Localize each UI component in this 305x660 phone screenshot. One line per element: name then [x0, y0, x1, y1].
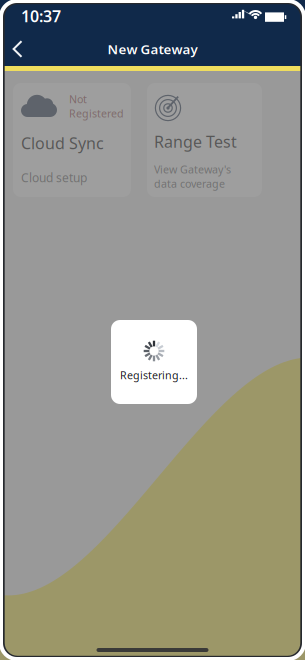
staticText: Not Registered — [69, 92, 124, 120]
staticText: Cloud Sync — [21, 132, 104, 153]
staticText: 10:37 — [21, 5, 61, 27]
staticText: Range Test — [154, 131, 237, 152]
button[interactable]: Back — [0, 32, 35, 66]
button[interactable]: Not Registered — [13, 83, 131, 197]
staticText: Cloud setup — [21, 170, 87, 185]
staticText: View Gateway's data coverage — [154, 162, 231, 190]
button[interactable]: Range Test — [147, 83, 262, 197]
staticText: Registering... — [120, 368, 188, 382]
staticText: New Gateway — [107, 40, 197, 58]
